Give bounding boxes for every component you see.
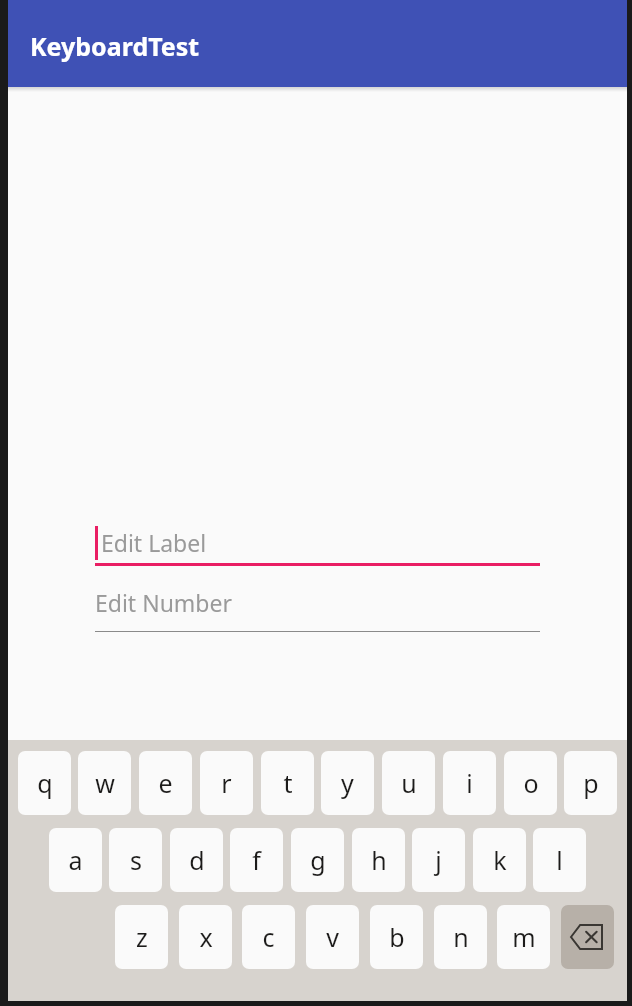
button[interactable]: q <box>18 751 71 815</box>
button[interactable]: c <box>242 905 295 969</box>
button[interactable]: t <box>261 751 314 815</box>
button[interactable]: e <box>139 751 192 815</box>
button[interactable]: j <box>412 828 465 892</box>
button[interactable]: n <box>434 905 487 969</box>
button[interactable]: g <box>291 828 344 892</box>
button[interactable]: v <box>306 905 359 969</box>
staticText: x <box>199 920 213 954</box>
button[interactable]: Edit Label <box>95 516 540 566</box>
staticText: e <box>158 766 173 800</box>
staticText: h <box>371 843 387 877</box>
button[interactable]: l <box>533 828 586 892</box>
staticText: d <box>189 843 205 877</box>
button[interactable]: y <box>321 751 374 815</box>
button[interactable]: s <box>109 828 162 892</box>
staticText: z <box>136 920 148 954</box>
button[interactable]: m <box>497 905 550 969</box>
button[interactable]: b <box>370 905 423 969</box>
button[interactable]: x <box>179 905 232 969</box>
staticText: r <box>221 766 232 800</box>
staticText: f <box>252 843 261 877</box>
button[interactable]: z <box>115 905 168 969</box>
button[interactable]: d <box>170 828 223 892</box>
staticText: c <box>262 920 275 954</box>
button[interactable]: a <box>49 828 102 892</box>
staticText: u <box>401 766 417 800</box>
staticText: m <box>512 920 536 954</box>
button[interactable]: h <box>352 828 405 892</box>
staticText: v <box>326 920 339 954</box>
staticText: p <box>583 766 599 800</box>
button[interactable]: Edit Number <box>95 582 540 632</box>
staticText: b <box>389 920 405 954</box>
button[interactable]: u <box>382 751 435 815</box>
button[interactable]: r <box>200 751 253 815</box>
button[interactable]: f <box>230 828 283 892</box>
button[interactable]: w <box>78 751 131 815</box>
staticText: Edit Label <box>101 527 207 558</box>
staticText: n <box>453 920 469 954</box>
staticText: w <box>95 766 115 800</box>
staticText: o <box>523 766 539 800</box>
staticText: l <box>556 843 563 877</box>
button[interactable]: i <box>443 751 496 815</box>
staticText: q <box>37 766 53 800</box>
button[interactable]: o <box>504 751 557 815</box>
button[interactable]: p <box>564 751 617 815</box>
staticText: KeyboardTest <box>30 29 200 63</box>
button[interactable]: k <box>473 828 526 892</box>
staticText: g <box>310 843 326 877</box>
staticText: k <box>493 843 507 877</box>
staticText: y <box>341 766 354 800</box>
staticText: j <box>435 843 442 877</box>
staticText: i <box>466 766 473 800</box>
staticText: s <box>130 843 142 877</box>
staticText: Edit Number <box>95 587 232 618</box>
button[interactable]: Backspace <box>561 905 614 969</box>
staticText: a <box>68 843 83 877</box>
staticText: t <box>283 766 293 800</box>
